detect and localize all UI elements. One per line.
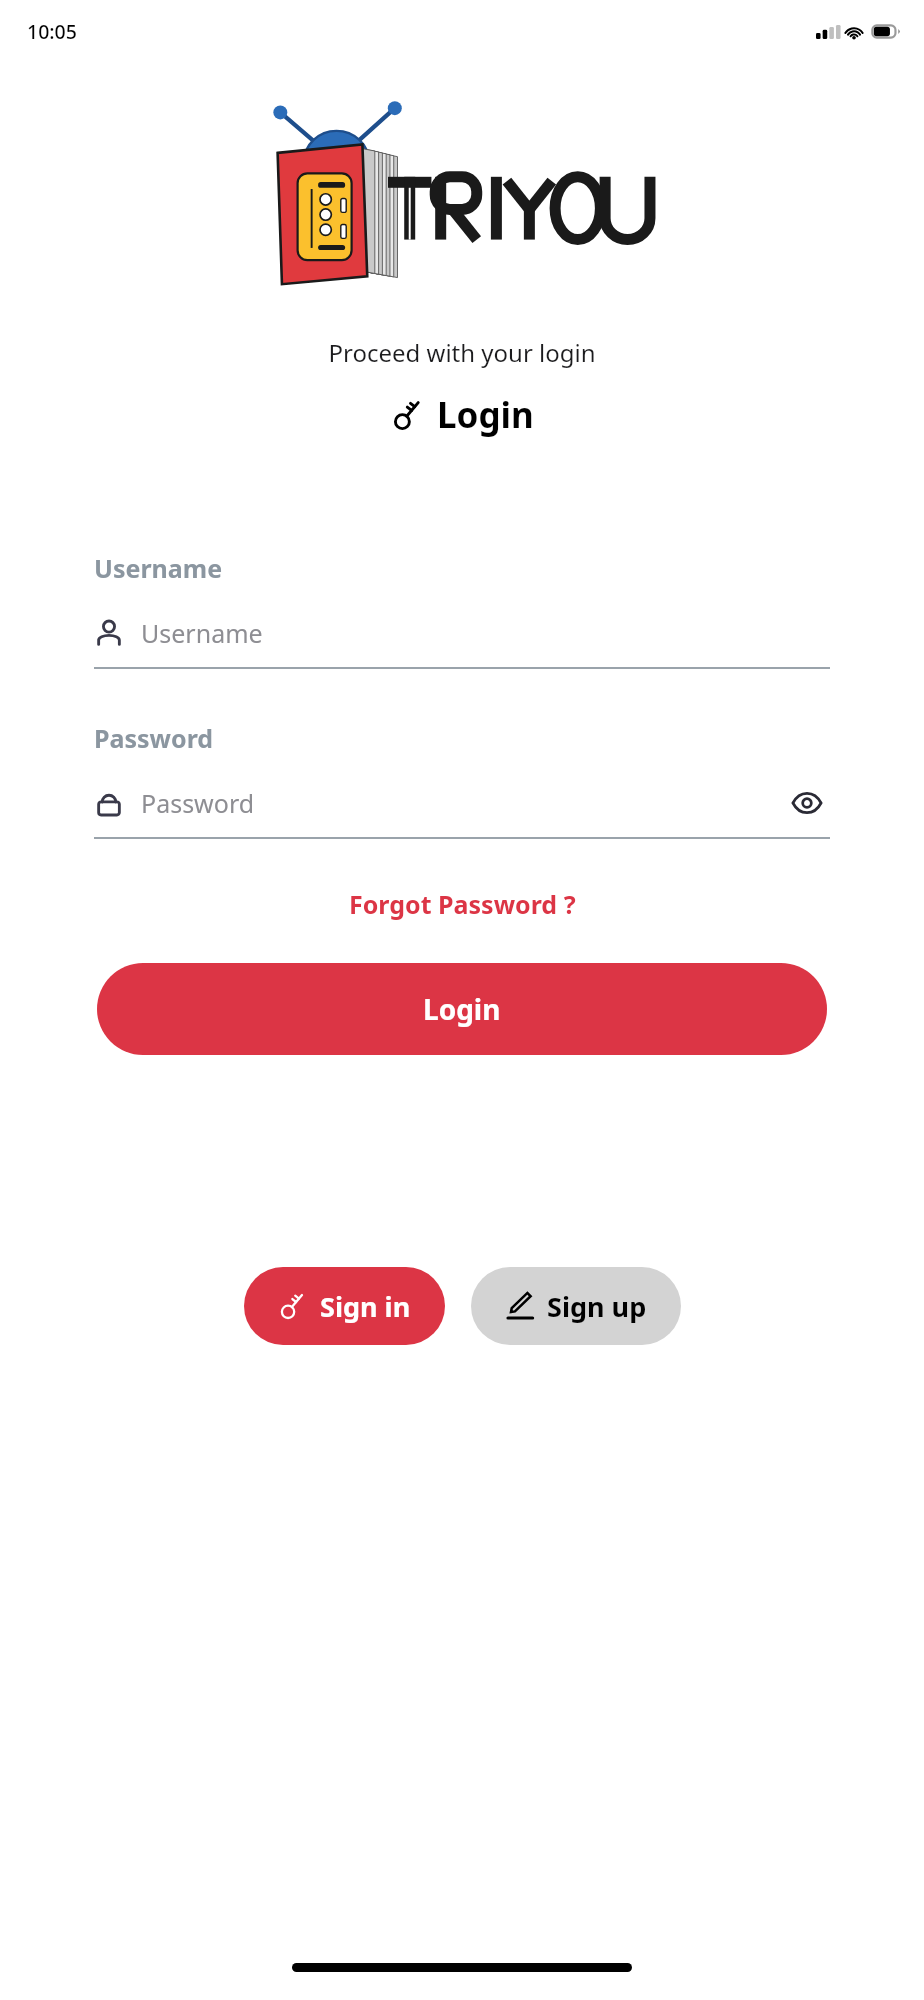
button[interactable]: Sign in (244, 1267, 445, 1345)
staticText: Sign in (320, 1288, 411, 1325)
button[interactable]: Sign up (471, 1267, 681, 1345)
button[interactable]: Login (97, 963, 827, 1055)
staticText: Password (94, 721, 214, 755)
button[interactable]: Forgot Password ? (333, 881, 592, 927)
staticText: Login (437, 391, 534, 439)
staticText: Forgot Password ? (349, 887, 576, 921)
staticText: Username (141, 616, 263, 650)
button[interactable]: Username (94, 607, 830, 659)
staticText: 10:05 (27, 18, 77, 45)
staticText: Username (94, 551, 223, 585)
staticText: Password (141, 786, 255, 820)
button[interactable]: Password (94, 777, 784, 829)
staticText: Proceed with your login (0, 336, 924, 369)
staticText: Login (423, 990, 501, 1028)
button[interactable]: Show password (784, 780, 830, 826)
staticText: Sign up (547, 1288, 647, 1325)
